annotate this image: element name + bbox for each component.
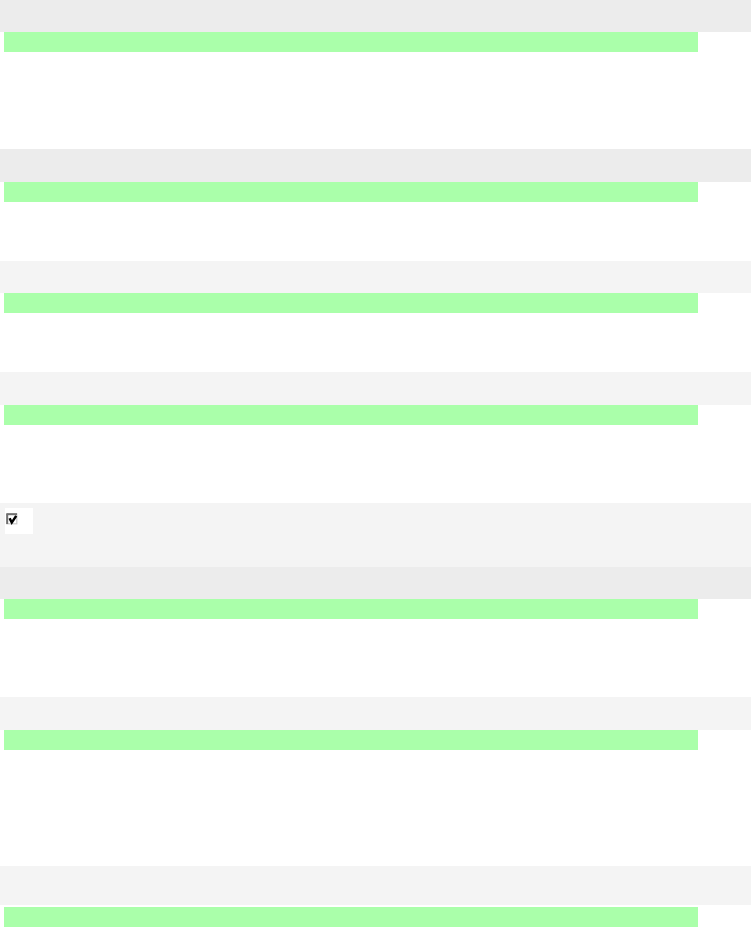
button[interactable]: Checked checkbox	[5, 508, 33, 534]
